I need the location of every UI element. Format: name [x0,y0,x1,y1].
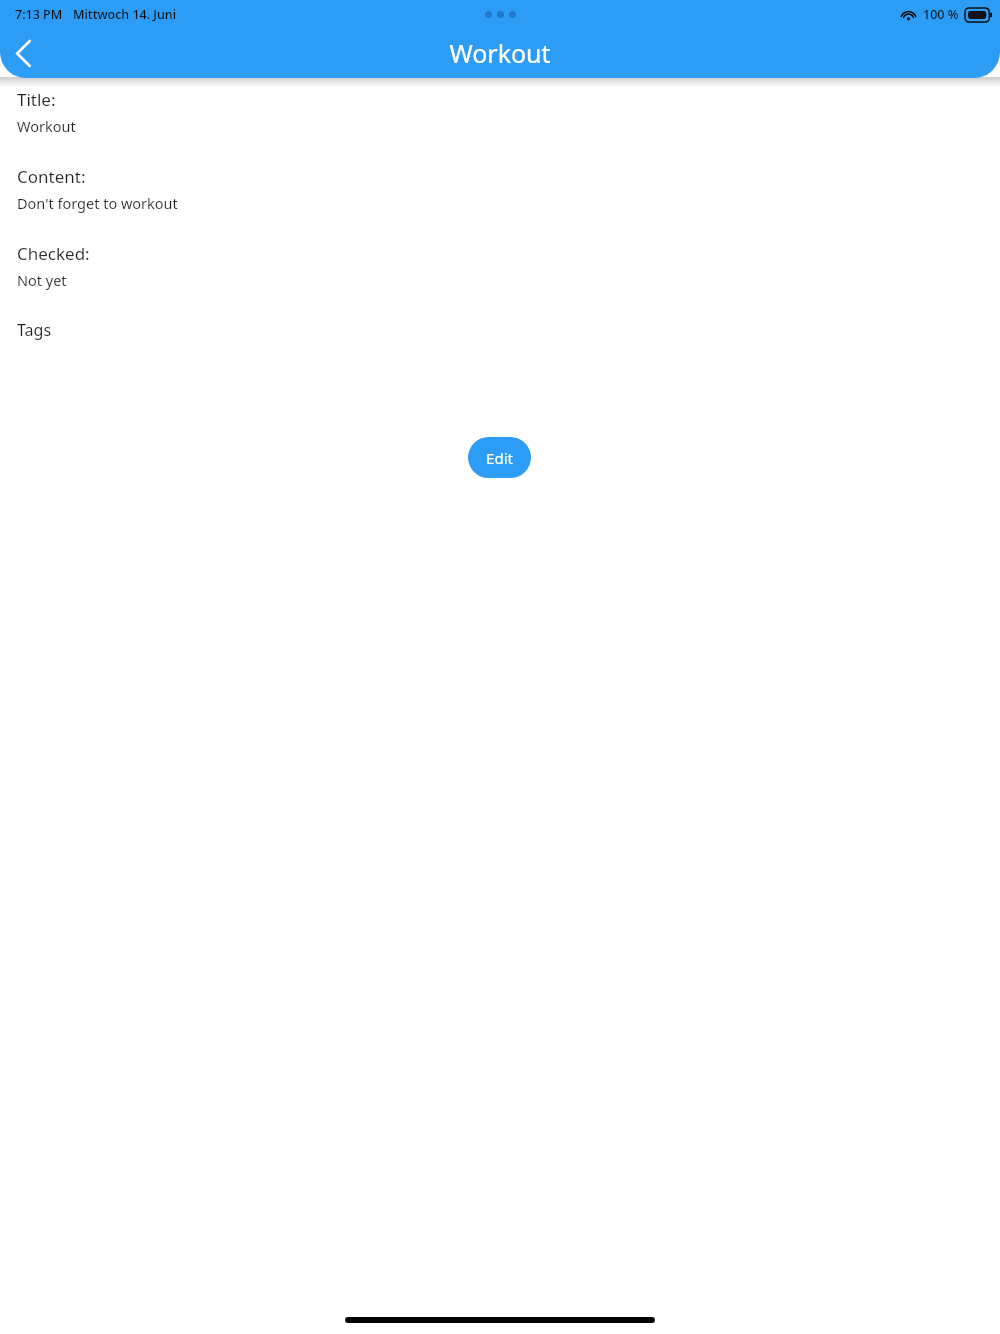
staticText: Checked: [17,242,90,265]
staticText: Workout [17,116,76,136]
staticText: 7:13 PM [15,6,63,23]
button[interactable]: Edit [468,437,531,478]
staticText: Not yet [17,270,67,290]
staticText: Mittwoch 14. Juni [73,6,177,23]
staticText: Edit [486,448,513,468]
staticText: Don't forget to workout [17,193,178,213]
staticText: Workout [449,36,551,70]
staticText: Content: [17,165,86,188]
staticText: 100 % [923,6,959,23]
button[interactable]: Back [0,30,46,76]
staticText: Tags [17,319,52,341]
staticText: Title: [17,88,56,111]
